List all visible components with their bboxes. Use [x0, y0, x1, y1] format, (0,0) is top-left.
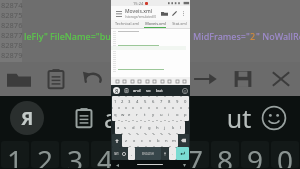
button[interactable]: Moveis.xml	[142, 20, 168, 28]
button[interactable]: More options	[179, 9, 187, 17]
staticText: 7	[160, 99, 163, 105]
button[interactable]: n	[162, 134, 170, 147]
button[interactable]: Undo	[74, 62, 111, 96]
button[interactable]: 6	[151, 141, 179, 168]
button[interactable]: Backspace	[178, 134, 189, 147]
button[interactable]: !#1	[112, 147, 120, 160]
button[interactable]: Stat.xml	[168, 20, 190, 28]
button[interactable]: u	[157, 108, 165, 121]
button[interactable]: Editor action 4	[136, 78, 142, 84]
button[interactable]: Clipboard	[70, 104, 98, 132]
staticText: 82879	[1, 50, 23, 60]
button[interactable]: Editor action 8	[166, 78, 172, 84]
button[interactable]: Editor action 2	[121, 78, 127, 84]
button[interactable]: Home	[137, 164, 163, 165]
staticText: g	[148, 125, 151, 131]
button[interactable]: h	[153, 121, 161, 134]
button[interactable]: Back	[114, 162, 120, 168]
button[interactable]: 8	[211, 141, 239, 168]
button[interactable]: .	[169, 147, 176, 160]
button[interactable]: x	[130, 134, 138, 147]
button[interactable]: 7	[181, 141, 209, 168]
button[interactable]: v	[146, 134, 154, 147]
button[interactable]: Voice input	[161, 147, 169, 160]
button[interactable]: s	[122, 121, 129, 134]
button[interactable]: 3	[61, 141, 89, 168]
button[interactable]: Open folder	[159, 8, 169, 18]
button[interactable]: Editor action 10	[181, 78, 187, 84]
button[interactable]: i	[165, 108, 173, 121]
button[interactable]: l	[177, 121, 185, 134]
button[interactable]: Emoji	[258, 102, 290, 134]
button[interactable]: Yandex	[10, 101, 44, 135]
button[interactable]: Editor action 1	[114, 78, 120, 84]
button[interactable]: Editor action 3	[129, 78, 135, 84]
button[interactable]: 2	[31, 141, 59, 168]
button[interactable]: Open file	[0, 62, 37, 96]
button[interactable]: e	[126, 108, 133, 121]
button[interactable]: t	[141, 108, 149, 121]
button[interactable]: c	[138, 134, 146, 147]
button[interactable]: 5	[141, 96, 149, 108]
button[interactable]: 6	[149, 96, 157, 108]
button[interactable]: 2	[119, 96, 126, 108]
button[interactable]: Redo	[186, 62, 224, 96]
button[interactable]: w	[119, 108, 126, 121]
button[interactable]: 4	[133, 96, 141, 108]
button[interactable]: Edit	[169, 8, 179, 18]
button[interactable]: Clipboard	[123, 87, 130, 94]
button[interactable]: 3	[126, 96, 133, 108]
button[interactable]: and	[133, 88, 141, 94]
button[interactable]: r	[133, 108, 141, 121]
button[interactable]: but	[156, 88, 163, 94]
button[interactable]: b	[154, 134, 162, 147]
button[interactable]: k	[169, 121, 177, 134]
button[interactable]: d	[129, 121, 137, 134]
button[interactable]: Hide keyboard	[181, 162, 187, 168]
button[interactable]: ENGLISH	[135, 147, 161, 160]
button[interactable]: 9	[173, 96, 181, 108]
button[interactable]: Editor action 7	[159, 78, 165, 84]
staticText: 15:24	[133, 1, 144, 6]
button[interactable]: Yandex	[113, 87, 120, 94]
button[interactable]: 7	[157, 96, 165, 108]
button[interactable]: f	[137, 121, 145, 134]
button[interactable]: Menu	[114, 9, 123, 18]
button[interactable]: Enter	[176, 147, 189, 160]
staticText: 4	[136, 99, 139, 105]
staticText: 0	[184, 99, 187, 105]
button[interactable]: 0	[271, 141, 299, 168]
button[interactable]: 1	[1, 141, 29, 168]
button[interactable]: g	[145, 121, 153, 134]
staticText: x	[133, 138, 136, 144]
button[interactable]: 1	[112, 96, 119, 108]
button[interactable]: 0	[181, 96, 189, 108]
button[interactable]: 8	[165, 96, 173, 108]
button[interactable]: so	[146, 88, 151, 94]
button[interactable]: q	[112, 108, 119, 121]
button[interactable]: Settings	[120, 147, 128, 160]
button[interactable]: m	[170, 134, 178, 147]
button[interactable]: Technical.xml	[111, 20, 142, 28]
staticText: c	[141, 138, 144, 144]
button[interactable]: Editor action 9	[174, 78, 180, 84]
button[interactable]: Shift	[112, 134, 122, 147]
staticText: MidFrames="	[193, 30, 250, 42]
button[interactable]: Close	[262, 62, 300, 96]
button[interactable]: j	[161, 121, 169, 134]
staticText: w	[121, 112, 125, 118]
button[interactable]: 4	[91, 141, 119, 168]
button[interactable]: o	[173, 108, 181, 121]
button[interactable]: y	[149, 108, 157, 121]
button[interactable]: Paste	[37, 62, 74, 96]
button[interactable]: a	[115, 121, 122, 134]
button[interactable]: ,	[128, 147, 135, 160]
button[interactable]: 5	[121, 141, 149, 168]
button[interactable]: Editor action 6	[151, 78, 157, 84]
button[interactable]: Emoji	[181, 87, 188, 94]
button[interactable]: Save	[224, 62, 262, 96]
button[interactable]: 9	[241, 141, 269, 168]
button[interactable]: Editor action 5	[144, 78, 150, 84]
button[interactable]: z	[122, 134, 130, 147]
button[interactable]: p	[181, 108, 189, 121]
